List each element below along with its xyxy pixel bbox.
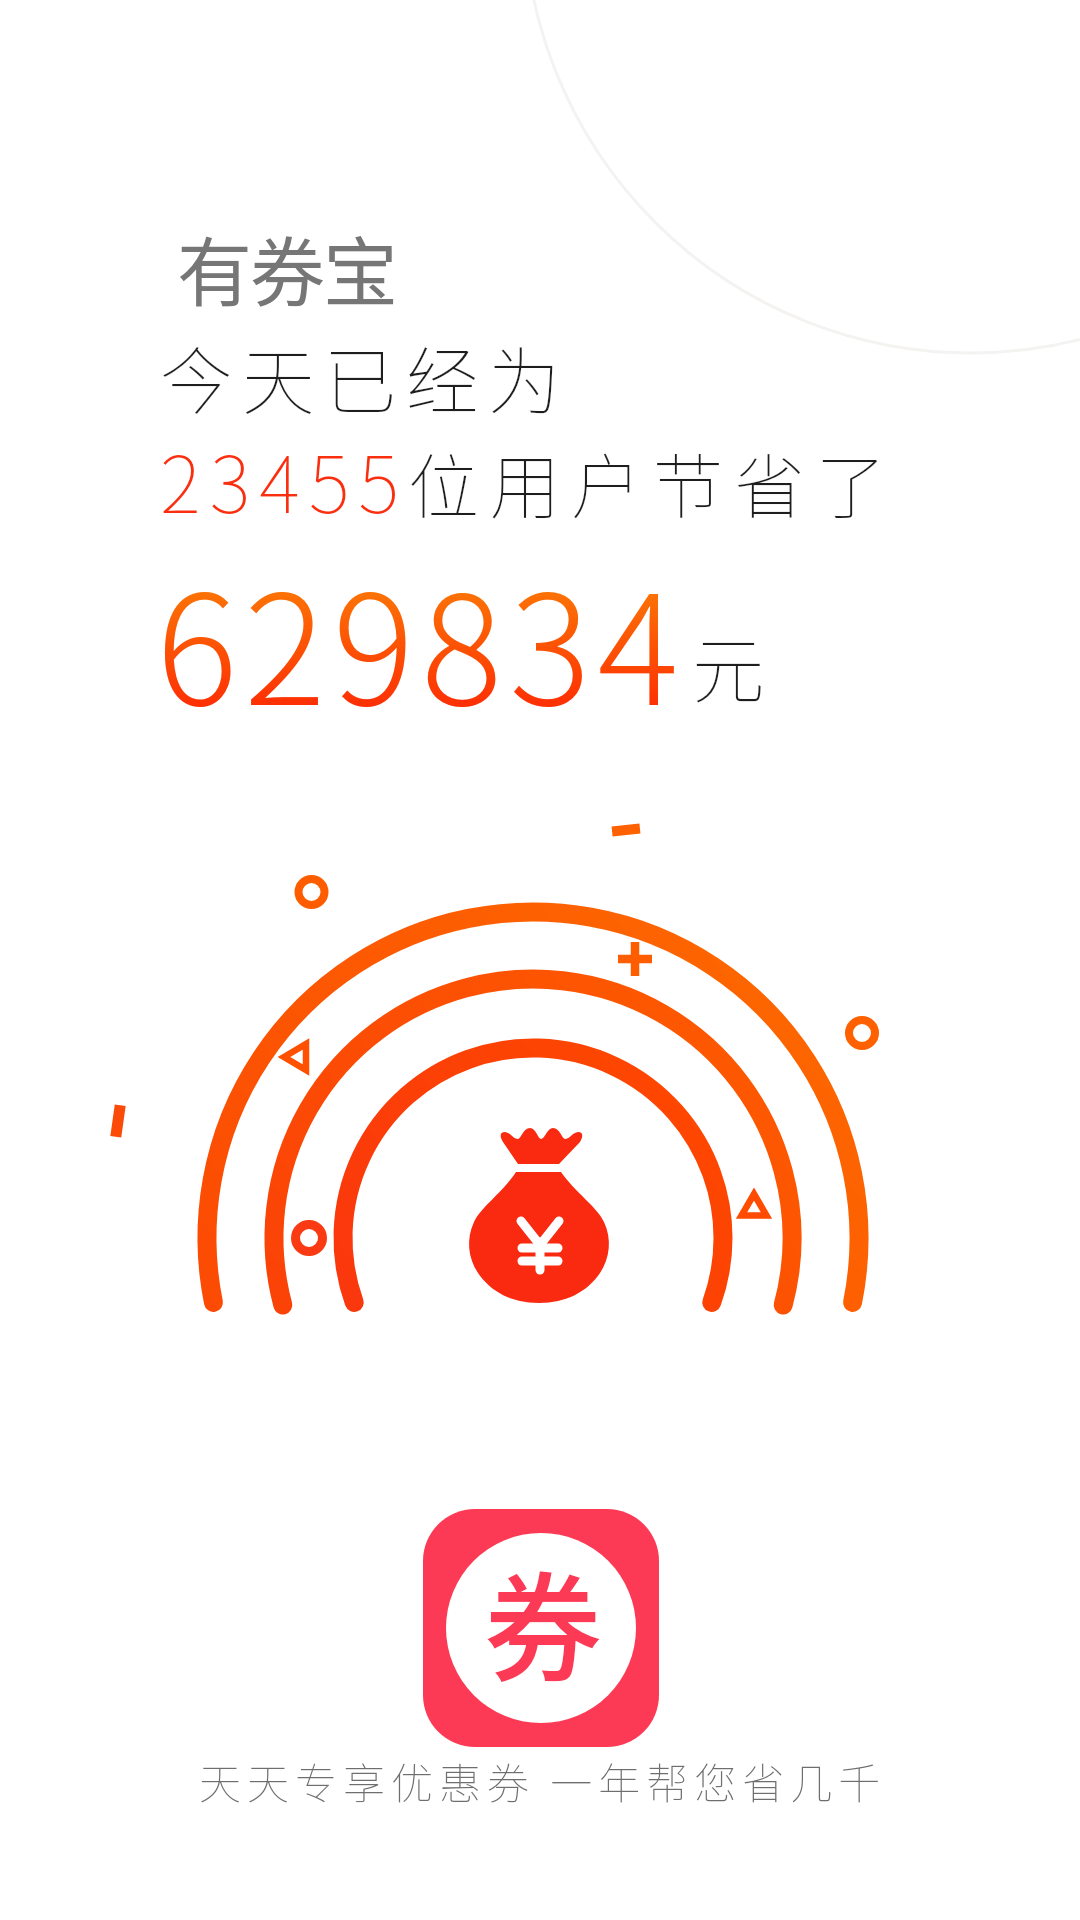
button[interactable]: 有券宝 启动页 — [0, 0, 1080, 1920]
